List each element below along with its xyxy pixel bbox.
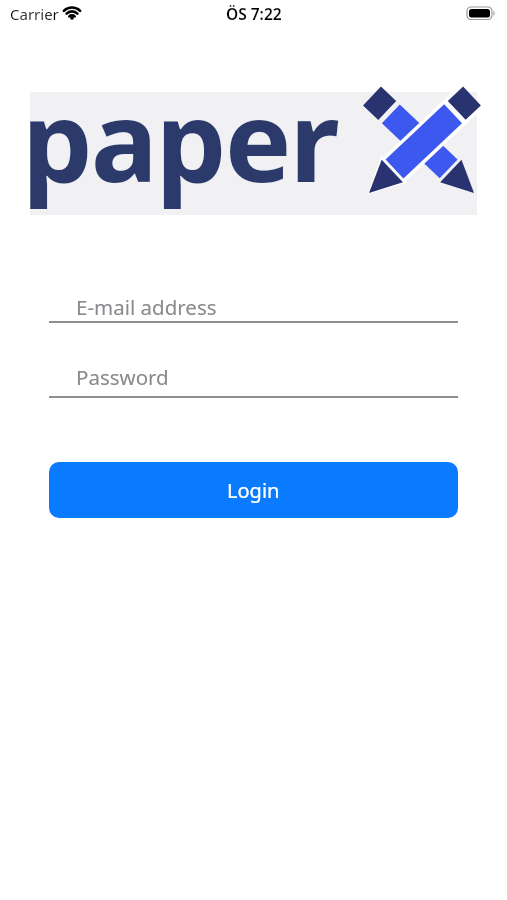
button[interactable]: Login <box>49 462 458 518</box>
staticText: paper <box>22 62 338 215</box>
staticText: Carrier <box>10 4 59 24</box>
button[interactable]: E-mail address <box>49 285 458 323</box>
staticText: Login <box>227 477 280 504</box>
staticText: E-mail address <box>76 293 217 321</box>
button[interactable]: Password <box>49 355 458 398</box>
staticText: ÖS 7:22 <box>226 3 282 24</box>
staticText: Password <box>76 363 169 391</box>
